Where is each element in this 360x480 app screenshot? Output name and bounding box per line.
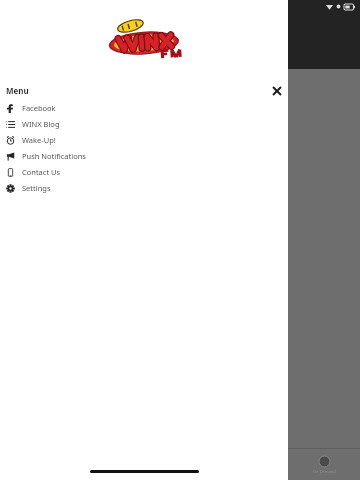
staticText: Facebook — [22, 103, 56, 113]
staticText: Push Notifications — [22, 151, 86, 161]
button[interactable]: On Demand — [288, 449, 360, 480]
staticText: Wake-Up! — [22, 135, 56, 145]
staticText: WINX Blog — [22, 119, 60, 129]
button[interactable]: Push Notifications — [0, 148, 288, 164]
button[interactable]: WINX Blog — [0, 116, 288, 132]
button[interactable]: Settings — [0, 180, 288, 196]
staticText: Contact Us — [22, 167, 61, 177]
staticText: Settings — [22, 183, 51, 193]
button[interactable]: Wake-Up! — [0, 132, 288, 148]
button[interactable]: Contact Us — [0, 164, 288, 180]
staticText: Menu — [6, 85, 29, 96]
button[interactable]: Close menu — [269, 83, 285, 98]
staticText: On Demand — [313, 469, 336, 474]
button[interactable]: Facebook — [0, 100, 288, 116]
